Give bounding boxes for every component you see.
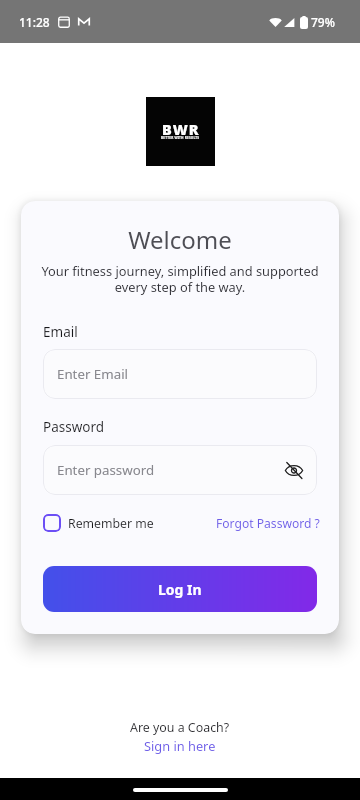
staticText: Enter password bbox=[57, 461, 155, 479]
staticText: 11:28 bbox=[19, 14, 50, 30]
button[interactable]: Sign in here bbox=[144, 737, 216, 754]
button[interactable]: Forgot Password ? bbox=[216, 515, 320, 531]
staticText: Welcome bbox=[43, 223, 317, 256]
button[interactable]: Remember me bbox=[43, 514, 154, 532]
staticText: Are you a Coach? bbox=[130, 719, 230, 736]
staticText: Log In bbox=[158, 580, 202, 599]
staticText: Password bbox=[43, 418, 105, 436]
button[interactable]: Enter password bbox=[43, 445, 317, 495]
staticText: Email bbox=[43, 323, 78, 341]
staticText: Forgot Password ? bbox=[216, 515, 320, 531]
staticText: 79% bbox=[311, 14, 335, 30]
button[interactable]: Enter Email bbox=[43, 349, 317, 399]
staticText: Your fitness journey, simplified and sup… bbox=[37, 262, 323, 296]
button[interactable]: Show password bbox=[281, 457, 307, 483]
staticText: BWR bbox=[162, 119, 200, 139]
button[interactable]: Log In bbox=[43, 566, 317, 612]
staticText: BETTER WITH RESULTS bbox=[161, 136, 200, 140]
staticText: Sign in here bbox=[144, 737, 216, 754]
staticText: Remember me bbox=[68, 515, 154, 532]
staticText: Enter Email bbox=[57, 365, 129, 383]
